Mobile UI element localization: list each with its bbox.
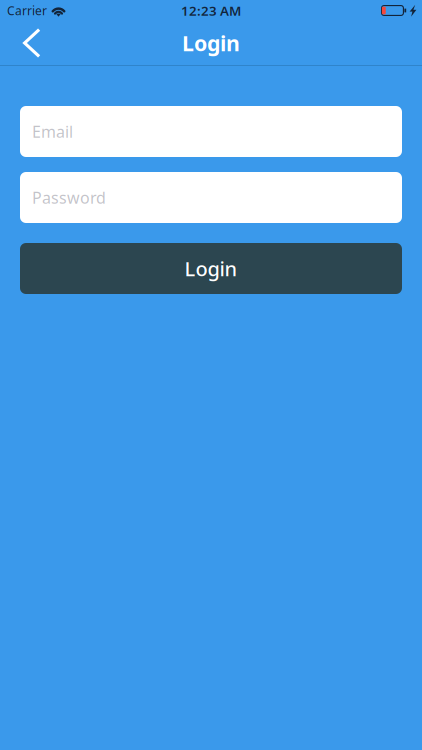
button[interactable]: Email xyxy=(20,106,402,157)
button[interactable]: Password xyxy=(20,172,402,223)
staticText: Email xyxy=(32,121,73,142)
staticText: 12:23 AM xyxy=(181,2,241,19)
button[interactable]: Login xyxy=(20,243,402,294)
staticText: Login xyxy=(182,29,240,57)
staticText: Carrier xyxy=(7,2,47,18)
staticText: Login xyxy=(184,255,237,282)
button[interactable]: Back xyxy=(0,21,55,65)
staticText: Password xyxy=(32,187,106,208)
